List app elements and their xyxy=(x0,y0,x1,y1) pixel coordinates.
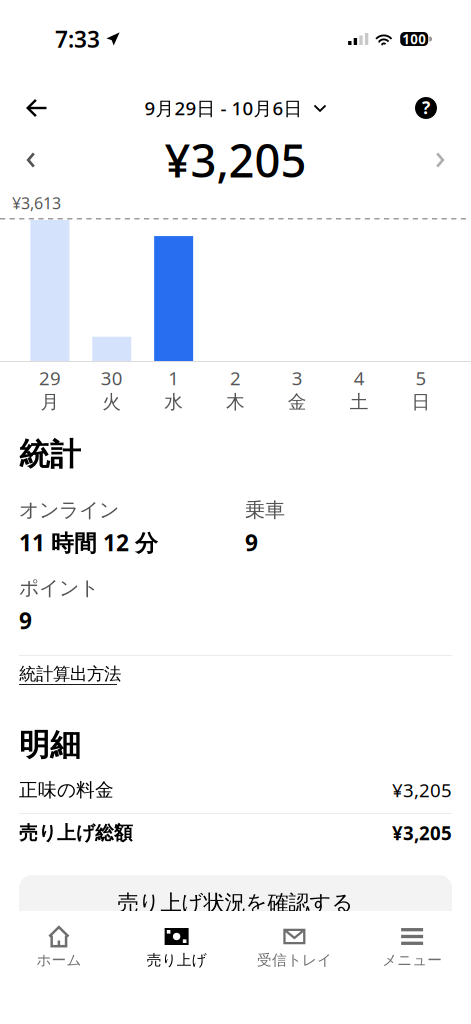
button[interactable]: 統計算出方法 xyxy=(19,656,121,689)
button[interactable]: Back xyxy=(13,86,61,130)
staticText: 統計算出方法 xyxy=(19,663,121,685)
staticText: 土 xyxy=(350,390,369,413)
staticText: ホーム xyxy=(36,951,81,969)
staticText: 11 時間 12 分 xyxy=(19,527,158,557)
staticText: 月 xyxy=(40,390,59,413)
button[interactable]: 売り上げ状況を確認する xyxy=(19,875,452,931)
staticText: 2 xyxy=(230,366,241,390)
staticText: 4 xyxy=(354,366,365,390)
staticText: 乗車 xyxy=(245,498,285,522)
staticText: 5 xyxy=(416,366,427,390)
staticText: ¥3,205 xyxy=(392,778,452,802)
staticText: 9 xyxy=(19,605,32,635)
staticText: 7:33 xyxy=(55,24,100,54)
button[interactable]: メニュー xyxy=(353,911,471,977)
staticText: ¥3,205 xyxy=(392,821,452,845)
staticText: 売り上げ xyxy=(147,951,207,969)
staticText: オンライン xyxy=(19,498,119,522)
button[interactable]: ホーム xyxy=(0,911,118,977)
staticText: ¥3,613 xyxy=(12,192,61,214)
button[interactable]: 受信トレイ xyxy=(235,911,353,977)
staticText: 明細 xyxy=(19,726,81,764)
staticText: 火 xyxy=(102,390,121,413)
staticText: 金 xyxy=(288,390,307,413)
staticText: 売り上げ総額 xyxy=(19,821,133,844)
staticText: 受信トレイ xyxy=(257,951,332,969)
button[interactable]: Help xyxy=(402,86,450,130)
button[interactable]: 9月29日 - 10月6日 xyxy=(136,86,334,130)
staticText: ? xyxy=(422,96,430,119)
staticText: 木 xyxy=(226,390,245,413)
staticText: 3 xyxy=(292,366,303,390)
staticText: 29 xyxy=(39,366,61,390)
staticText: 9 xyxy=(245,527,258,557)
staticText: 9月29日 - 10月6日 xyxy=(144,96,302,120)
staticText: 1 xyxy=(168,366,179,390)
button[interactable]: Previous period xyxy=(9,137,53,183)
staticText: 水 xyxy=(164,390,183,413)
button[interactable]: Next period xyxy=(418,137,462,183)
staticText: 売り上げ状況を確認する xyxy=(117,890,353,916)
staticText: 統計 xyxy=(19,436,81,473)
button[interactable]: 売り上げ xyxy=(118,911,236,977)
staticText: ポイント xyxy=(19,576,99,600)
staticText: メニュー xyxy=(382,951,442,969)
staticText: 正味の料金 xyxy=(19,778,114,801)
staticText: ¥3,205 xyxy=(164,130,306,190)
staticText: 30 xyxy=(101,366,123,390)
staticText: 100 xyxy=(402,30,426,48)
staticText: 日 xyxy=(412,390,431,413)
